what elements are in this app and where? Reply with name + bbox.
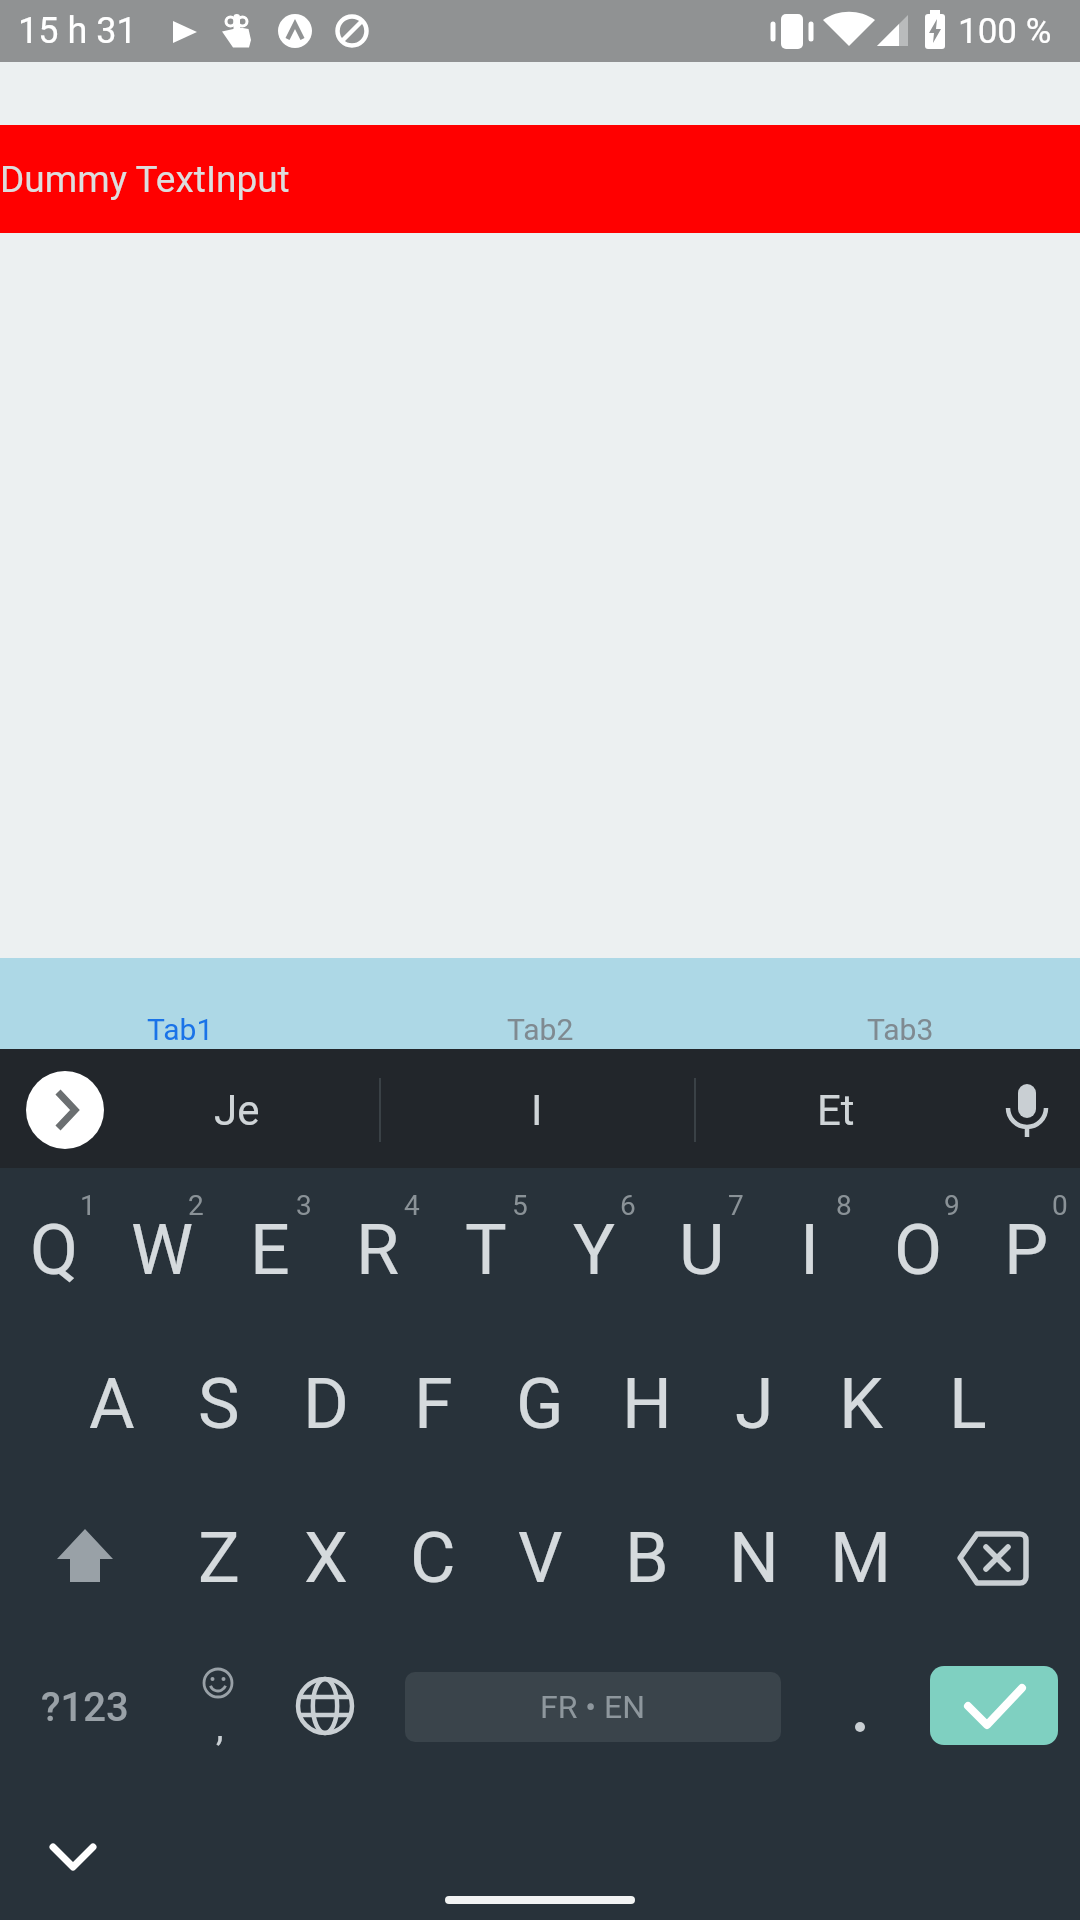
staticText: Tab2 [507, 1012, 574, 1047]
button[interactable]: P [972, 1175, 1080, 1325]
staticText: 5 [512, 1189, 528, 1222]
button[interactable]: FR • EN [405, 1672, 781, 1742]
staticText: U [679, 1209, 725, 1291]
staticText: T [465, 1209, 507, 1291]
button[interactable]: Dummy TextInput [0, 125, 1080, 233]
button[interactable]: Je [97, 1055, 377, 1165]
staticText: C [410, 1517, 456, 1599]
button[interactable]: T [432, 1175, 540, 1325]
staticText: Et [817, 1086, 855, 1135]
staticText: 15 h 31 [18, 10, 137, 52]
button[interactable]: B [594, 1483, 700, 1633]
button[interactable]: N [701, 1483, 807, 1633]
staticText: 0 [1052, 1189, 1068, 1222]
button[interactable]: X [273, 1483, 379, 1633]
button[interactable]: Tab1 [0, 958, 360, 1049]
button[interactable]: I [756, 1175, 864, 1325]
staticText: I [531, 1086, 543, 1135]
button[interactable]: Z [166, 1483, 272, 1633]
staticText: Z [198, 1517, 240, 1599]
button[interactable]: U [648, 1175, 756, 1325]
staticText: Y [573, 1209, 616, 1291]
button[interactable]: Y [540, 1175, 648, 1325]
button[interactable]: H [594, 1329, 700, 1479]
staticText: M [830, 1517, 892, 1599]
staticText: L [949, 1363, 987, 1445]
button[interactable] [23, 1807, 123, 1907]
button[interactable] [158, 1647, 278, 1767]
staticText: O [894, 1209, 943, 1291]
staticText: ?123 [41, 1684, 129, 1731]
button[interactable]: E [216, 1175, 324, 1325]
staticText: Je [214, 1086, 260, 1135]
staticText: K [839, 1363, 883, 1445]
staticText: 9 [944, 1189, 960, 1222]
button[interactable]: Et [696, 1055, 976, 1165]
button[interactable]: G [487, 1329, 593, 1479]
button[interactable]: D [273, 1329, 379, 1479]
button[interactable] [820, 1667, 900, 1747]
button[interactable]: ?123 [5, 1647, 165, 1767]
button[interactable] [26, 1071, 104, 1149]
staticText: X [304, 1517, 348, 1599]
staticText: B [625, 1517, 669, 1599]
staticText: Tab3 [867, 1012, 934, 1047]
button[interactable]: I [397, 1055, 677, 1165]
button[interactable]: J [701, 1329, 807, 1479]
staticText: V [518, 1517, 563, 1599]
button[interactable]: K [808, 1329, 914, 1479]
button[interactable] [930, 1666, 1058, 1745]
button[interactable] [264, 1647, 384, 1767]
button[interactable]: C [380, 1483, 486, 1633]
staticText: H [622, 1363, 672, 1445]
staticText: E [250, 1209, 290, 1291]
button[interactable]: Q [0, 1175, 108, 1325]
button[interactable]: M [808, 1483, 914, 1633]
staticText: 100 % [958, 11, 1052, 52]
staticText: Dummy TextInput [0, 158, 290, 201]
staticText: 4 [404, 1189, 420, 1222]
staticText: FR • EN [540, 1688, 646, 1726]
staticText: R [356, 1209, 400, 1291]
button[interactable]: A [59, 1329, 165, 1479]
button[interactable] [931, 1496, 1055, 1620]
staticText: W [131, 1209, 194, 1291]
staticText: P [1004, 1209, 1049, 1291]
staticText: N [729, 1517, 779, 1599]
staticText: I [800, 1209, 820, 1291]
staticText: 6 [620, 1189, 636, 1222]
staticText: 8 [836, 1189, 852, 1222]
staticText: 2 [188, 1189, 204, 1222]
button[interactable]: Tab3 [720, 958, 1080, 1049]
button[interactable]: F [380, 1329, 486, 1479]
staticText: J [735, 1363, 774, 1445]
staticText: Tab1 [147, 1012, 214, 1047]
staticText: S [198, 1363, 240, 1445]
staticText: D [303, 1363, 349, 1445]
button[interactable]: W [108, 1175, 216, 1325]
staticText: F [414, 1363, 453, 1445]
staticText: A [89, 1363, 135, 1445]
button[interactable]: V [487, 1483, 593, 1633]
button[interactable]: O [864, 1175, 972, 1325]
staticText: G [516, 1363, 564, 1445]
staticText: 7 [728, 1189, 744, 1222]
button[interactable]: L [915, 1329, 1021, 1479]
staticText: Q [30, 1209, 79, 1291]
staticText: 1 [80, 1189, 96, 1222]
staticText: 3 [296, 1189, 312, 1222]
button[interactable]: Tab2 [360, 958, 720, 1049]
button[interactable]: R [324, 1175, 432, 1325]
button[interactable] [23, 1496, 147, 1620]
button[interactable] [985, 1072, 1069, 1148]
button[interactable]: S [166, 1329, 272, 1479]
staticText: , [216, 1705, 224, 1750]
